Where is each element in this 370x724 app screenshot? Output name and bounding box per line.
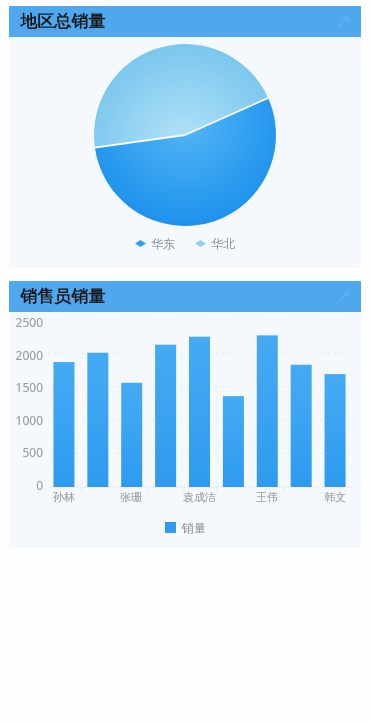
staticText: 张珊 [120, 490, 142, 504]
button[interactable]: 销售员销量 [9, 281, 361, 312]
staticText: 地区总销量 [20, 11, 105, 32]
button[interactable]: 华北 [195, 236, 235, 251]
staticText: 销售员销量 [20, 286, 105, 307]
staticText: 2500 [15, 314, 43, 330]
button[interactable]: 地区总销量 [9, 6, 361, 268]
staticText: 袁成洁 [183, 490, 216, 504]
staticText: 2000 [15, 347, 43, 363]
button[interactable]: 华东 [135, 236, 175, 251]
staticText: 华北 [211, 236, 235, 251]
button[interactable]: Expand chart [336, 290, 350, 304]
staticText: 0 [36, 477, 43, 493]
staticText: 华东 [151, 236, 175, 251]
staticText: 1500 [15, 379, 43, 395]
button[interactable]: 销售员销量 [9, 281, 361, 548]
button[interactable]: 地区总销量 [9, 6, 361, 37]
button[interactable]: Expand chart [336, 15, 350, 29]
staticText: 销量 [182, 520, 206, 535]
staticText: 王伟 [256, 490, 278, 504]
staticText: 500 [22, 444, 43, 460]
staticText: 孙林 [53, 490, 75, 504]
button[interactable]: 销量 [165, 520, 206, 535]
staticText: 1000 [15, 412, 43, 428]
staticText: 韩文 [324, 490, 346, 504]
